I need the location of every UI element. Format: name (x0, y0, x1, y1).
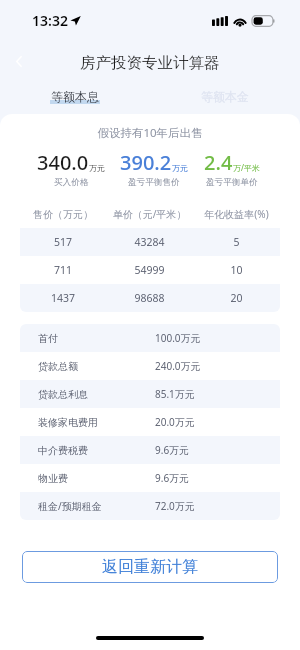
staticText: 等额本息 (51, 89, 99, 104)
staticText: 贷款总额 (38, 360, 78, 373)
staticText: 租金/预期租金 (38, 499, 102, 513)
staticText: 中介费税费 (38, 444, 88, 457)
button[interactable]: 装修家电费用 (20, 408, 280, 436)
staticText: 首付 (38, 332, 58, 345)
staticText: 万/平米 (233, 162, 260, 173)
button[interactable]: 首付 (20, 324, 280, 352)
staticText: 盈亏平衡单价 (206, 177, 258, 188)
staticText: 假设持有10年后出售 (0, 125, 300, 141)
staticText: 万元 (89, 163, 105, 173)
button[interactable]: 中介费税费 (20, 436, 280, 464)
staticText: 物业费 (38, 472, 68, 485)
staticText: 711 (20, 263, 106, 277)
staticText: 9.6万元 (155, 471, 280, 485)
button[interactable]: 贷款总利息 (20, 380, 280, 408)
staticText: 5 (193, 235, 280, 249)
staticText: 43284 (106, 235, 193, 249)
staticText: 盈亏平衡售价 (128, 177, 180, 188)
staticText: 返回重新计算 (102, 557, 198, 577)
button[interactable]: 等额本金 (150, 78, 300, 114)
staticText: 98688 (106, 291, 193, 305)
staticText: 万元 (172, 163, 188, 173)
staticText: 20.0万元 (155, 415, 280, 429)
staticText: 单价（元/平米） (106, 207, 193, 221)
staticText: 1437 (20, 291, 106, 305)
button[interactable]: 等额本息 (0, 78, 150, 114)
staticText: 20 (193, 291, 280, 305)
staticText: 13:32 (32, 11, 68, 30)
staticText: 贷款总利息 (38, 388, 88, 401)
staticText: 54999 (106, 263, 193, 277)
staticText: 年化收益率(%) (193, 207, 280, 221)
staticText: 240.0万元 (155, 359, 280, 373)
staticText: 售价（万元） (20, 208, 106, 221)
staticText: 517 (20, 235, 106, 249)
staticText: 2.4 (204, 149, 233, 176)
button[interactable]: 返回重新计算 (22, 551, 278, 583)
staticText: 340.0 (37, 149, 89, 176)
staticText: 390.2 (120, 149, 172, 176)
button[interactable]: 租金/预期租金 (20, 492, 280, 520)
staticText: 装修家电费用 (38, 416, 98, 429)
staticText: 9.6万元 (155, 443, 280, 457)
staticText: 房产投资专业计算器 (80, 53, 220, 73)
staticText: 买入价格 (54, 177, 89, 188)
staticText: 10 (193, 263, 280, 277)
staticText: 85.1万元 (155, 387, 280, 401)
button[interactable]: 贷款总额 (20, 352, 280, 380)
staticText: 72.0万元 (155, 499, 280, 513)
staticText: 等额本金 (201, 89, 249, 104)
button[interactable]: 物业费 (20, 464, 280, 492)
staticText: 100.0万元 (155, 331, 280, 345)
